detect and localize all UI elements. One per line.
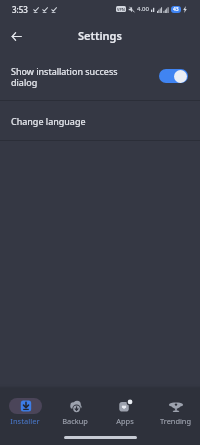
button[interactable]: Trending: [150, 392, 200, 426]
staticText: Backup: [62, 416, 88, 426]
button[interactable]: Apps: [100, 392, 150, 426]
button[interactable]: Installer: [0, 392, 50, 426]
staticText: Show installation success dialog: [11, 65, 131, 88]
staticText: Settings: [78, 28, 122, 43]
staticText: Installer: [10, 416, 40, 426]
button[interactable]: Change language: [0, 101, 200, 140]
button[interactable]: Show installation success dialog: [0, 53, 200, 100]
staticText: VPN: [117, 7, 125, 12]
staticText: Apps: [116, 416, 134, 426]
staticText: 4.00: [137, 5, 149, 13]
staticText: 3:53: [12, 4, 28, 15]
button[interactable]: Back: [3, 23, 29, 49]
staticText: Trending: [160, 416, 191, 426]
button[interactable]: Backup: [50, 392, 100, 426]
staticText: 43: [173, 6, 179, 13]
staticText: Change language: [11, 115, 86, 127]
